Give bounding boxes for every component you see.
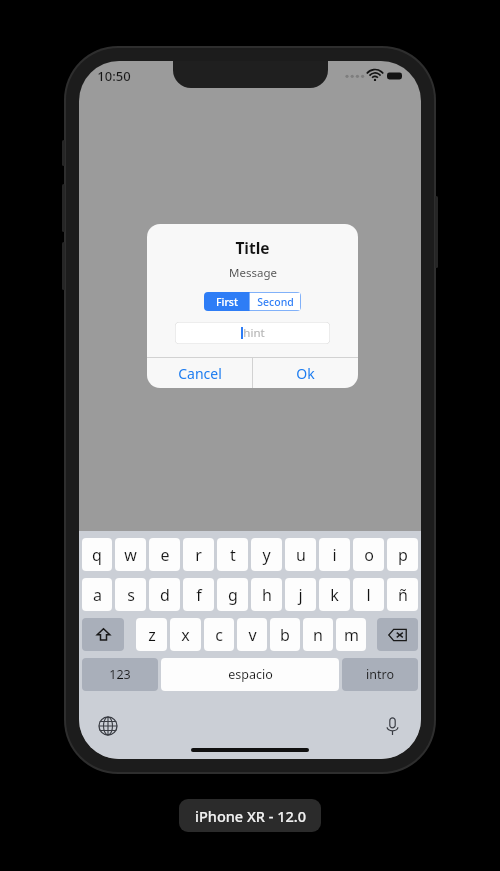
- staticText: Ok: [296, 364, 315, 383]
- staticText: j: [298, 584, 303, 606]
- staticText: m: [344, 624, 359, 646]
- button[interactable]: l: [353, 578, 384, 611]
- button[interactable]: o: [353, 538, 384, 571]
- staticText: espacio: [228, 666, 273, 683]
- button[interactable]: k: [319, 578, 350, 611]
- staticText: w: [124, 544, 137, 566]
- staticText: n: [313, 624, 323, 646]
- staticText: e: [160, 544, 170, 566]
- staticText: h: [262, 584, 272, 606]
- button[interactable]: f: [183, 578, 214, 611]
- staticText: i: [332, 544, 337, 566]
- staticText: iPhone XR - 12.0: [195, 806, 306, 826]
- button[interactable]: iPhone XR - 12.0: [179, 799, 321, 832]
- staticText: Second: [257, 295, 294, 309]
- button[interactable]: Backspace: [377, 618, 418, 651]
- staticText: y: [262, 544, 271, 566]
- staticText: b: [280, 624, 290, 646]
- button[interactable]: w: [115, 538, 146, 571]
- staticText: 10:50: [97, 67, 131, 85]
- staticText: x: [181, 624, 190, 646]
- staticText: d: [160, 584, 170, 606]
- button[interactable]: intro: [342, 658, 418, 691]
- button[interactable]: Ok: [253, 358, 358, 388]
- staticText: f: [196, 584, 202, 606]
- staticText: z: [148, 624, 156, 646]
- staticText: 123: [109, 666, 131, 683]
- button[interactable]: z: [136, 618, 167, 651]
- button[interactable]: Change keyboard language: [95, 713, 121, 739]
- button[interactable]: v: [237, 618, 267, 651]
- button[interactable]: d: [149, 578, 180, 611]
- staticText: a: [93, 584, 102, 606]
- button[interactable]: m: [336, 618, 366, 651]
- button[interactable]: u: [285, 538, 316, 571]
- button[interactable]: Dictate: [379, 713, 405, 739]
- button[interactable]: b: [270, 618, 300, 651]
- staticText: Message: [229, 265, 277, 281]
- button[interactable]: h: [251, 578, 282, 611]
- button[interactable]: a: [82, 578, 112, 611]
- staticText: v: [248, 624, 257, 646]
- button[interactable]: ñ: [387, 578, 418, 611]
- staticText: s: [127, 584, 135, 606]
- staticText: l: [366, 584, 371, 606]
- button[interactable]: p: [387, 538, 418, 571]
- button[interactable]: j: [285, 578, 316, 611]
- staticText: p: [398, 544, 408, 566]
- button[interactable]: Shift: [82, 618, 124, 651]
- button[interactable]: t: [217, 538, 248, 571]
- button[interactable]: r: [183, 538, 214, 571]
- staticText: Title: [235, 237, 270, 258]
- button[interactable]: s: [115, 578, 146, 611]
- button[interactable]: q: [82, 538, 112, 571]
- staticText: u: [296, 544, 306, 566]
- button[interactable]: Second: [249, 292, 301, 311]
- button[interactable]: espacio: [161, 658, 339, 691]
- staticText: o: [364, 544, 374, 566]
- button[interactable]: i: [319, 538, 350, 571]
- staticText: k: [330, 584, 339, 606]
- button[interactable]: y: [251, 538, 282, 571]
- button[interactable]: x: [170, 618, 201, 651]
- button[interactable]: n: [303, 618, 333, 651]
- button[interactable]: e: [149, 538, 180, 571]
- button[interactable]: Cancel: [147, 358, 252, 388]
- staticText: hint: [243, 325, 265, 341]
- staticText: ñ: [398, 584, 408, 606]
- staticText: q: [92, 544, 102, 566]
- staticText: t: [230, 544, 236, 566]
- staticText: Cancel: [178, 364, 222, 383]
- button[interactable]: 123: [82, 658, 158, 691]
- button[interactable]: g: [217, 578, 248, 611]
- staticText: r: [195, 544, 202, 566]
- staticText: c: [215, 624, 223, 646]
- staticText: intro: [366, 666, 394, 683]
- button[interactable]: First: [204, 292, 249, 311]
- staticText: First: [216, 295, 238, 309]
- button[interactable]: hint: [175, 322, 330, 344]
- staticText: g: [228, 584, 238, 606]
- button[interactable]: c: [204, 618, 234, 651]
